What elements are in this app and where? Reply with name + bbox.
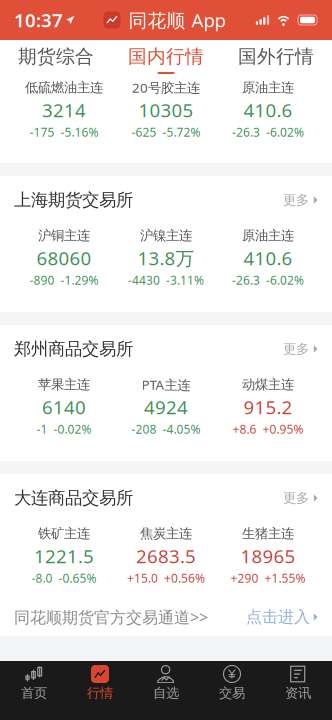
staticText: 6140 (42, 395, 86, 419)
button[interactable]: 原油主连 (217, 76, 318, 143)
staticText: 20号胶主连 (132, 79, 200, 96)
button[interactable]: 首页 (1, 661, 67, 720)
staticText: -26.3 (232, 124, 260, 140)
staticText: -3.11% (166, 272, 204, 288)
staticText: 915.2 (243, 395, 292, 419)
staticText: +0.95% (262, 421, 303, 437)
staticText: +15.0 (127, 570, 158, 586)
staticText: -1 (36, 421, 47, 437)
staticText: 郑州商品交易所 (14, 338, 133, 360)
staticText: 点击进入 (246, 607, 310, 627)
staticText: +0.56% (164, 570, 205, 586)
staticText: +290 (230, 570, 258, 586)
button[interactable]: 低硫燃油主连 (13, 76, 114, 143)
staticText: -0.65% (58, 570, 96, 586)
button[interactable]: 更多 (283, 325, 318, 373)
staticText: 更多 (283, 341, 309, 357)
staticText: 动煤主连 (242, 376, 294, 393)
button[interactable]: 同花顺期货官方交易通道>> (0, 598, 332, 636)
staticText: PTA主连 (141, 376, 190, 393)
button[interactable]: 20号胶主连 (115, 76, 216, 143)
button[interactable]: 更多 (283, 474, 318, 522)
button[interactable]: 期货综合 (1, 40, 111, 76)
staticText: 3214 (42, 98, 86, 122)
staticText: 4924 (144, 395, 188, 419)
staticText: 13.8万 (137, 246, 194, 270)
staticText: 上海期货交易所 (14, 189, 133, 211)
staticText: -5.72% (162, 124, 200, 140)
button[interactable]: 资讯 (265, 661, 331, 720)
button[interactable]: 沪镍主连 (115, 224, 216, 291)
button[interactable]: 自选 (133, 661, 199, 720)
button[interactable]: 更多 (283, 176, 318, 224)
staticText: 期货综合 (18, 45, 94, 68)
staticText: 10:37 (14, 8, 63, 32)
staticText: +1.55% (264, 570, 305, 586)
button[interactable]: 国内行情 (111, 40, 221, 76)
staticText: 生猪主连 (242, 525, 294, 542)
staticText: -6.02% (266, 124, 304, 140)
staticText: -4430 (128, 272, 160, 288)
button[interactable]: 焦炭主连 (115, 522, 216, 589)
button[interactable]: 国外行情 (221, 40, 331, 76)
staticText: 沪镍主连 (140, 227, 192, 244)
staticText: 低硫燃油主连 (25, 79, 103, 96)
staticText: -625 (131, 124, 156, 140)
button[interactable]: 行情 (67, 661, 133, 720)
staticText: 10305 (138, 98, 193, 122)
staticText: -175 (29, 124, 54, 140)
button[interactable]: 沪铜主连 (13, 224, 114, 291)
staticText: 同花顺期货官方交易通道>> (14, 606, 208, 628)
staticText: 铁矿主连 (38, 525, 90, 542)
staticText: 苹果主连 (38, 376, 90, 393)
staticText: 410.6 (243, 98, 292, 122)
staticText: 2683.5 (136, 544, 196, 568)
staticText: 资讯 (285, 685, 311, 701)
button[interactable]: 交易 (199, 661, 265, 720)
staticText: 68060 (36, 246, 91, 270)
staticText: -208 (131, 421, 156, 437)
staticText: 自选 (153, 685, 179, 701)
staticText: 焦炭主连 (140, 525, 192, 542)
staticText: 1221.5 (34, 544, 94, 568)
button[interactable]: 苹果主连 (13, 373, 114, 440)
staticText: 更多 (283, 490, 309, 506)
staticText: 同花顺 App (128, 8, 225, 32)
staticText: -5.16% (60, 124, 98, 140)
staticText: 更多 (283, 192, 309, 208)
button[interactable]: 生猪主连 (217, 522, 318, 589)
button[interactable]: PTA主连 (115, 373, 216, 440)
staticText: -26.3 (232, 272, 260, 288)
staticText: -1.29% (60, 272, 98, 288)
staticText: -8.0 (31, 570, 52, 586)
staticText: 国内行情 (128, 45, 204, 68)
staticText: -6.02% (266, 272, 304, 288)
staticText: 交易 (219, 685, 245, 701)
staticText: 首页 (21, 685, 47, 701)
staticText: 行情 (87, 685, 113, 701)
staticText: -4.05% (162, 421, 200, 437)
button[interactable]: 动煤主连 (217, 373, 318, 440)
staticText: 国外行情 (238, 45, 314, 68)
staticText: 18965 (240, 544, 295, 568)
staticText: +8.6 (232, 421, 256, 437)
staticText: -0.02% (53, 421, 91, 437)
staticText: 410.6 (243, 246, 292, 270)
staticText: 原油主连 (242, 79, 294, 96)
staticText: 沪铜主连 (38, 227, 90, 244)
button[interactable]: 铁矿主连 (13, 522, 114, 589)
staticText: -890 (29, 272, 54, 288)
staticText: 原油主连 (242, 227, 294, 244)
staticText: 大连商品交易所 (14, 487, 133, 509)
button[interactable]: 原油主连 (217, 224, 318, 291)
